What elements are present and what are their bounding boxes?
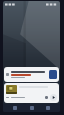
- button[interactable]: More: [45, 96, 48, 99]
- button[interactable]: Play: [50, 94, 57, 101]
- button[interactable]: More: [4, 83, 59, 103]
- button[interactable]: Action: [4, 67, 59, 82]
- button[interactable]: Back: [43, 104, 53, 112]
- button[interactable]: Action: [49, 70, 57, 79]
- button[interactable]: Home: [27, 104, 37, 112]
- button[interactable]: Recents: [10, 104, 20, 112]
